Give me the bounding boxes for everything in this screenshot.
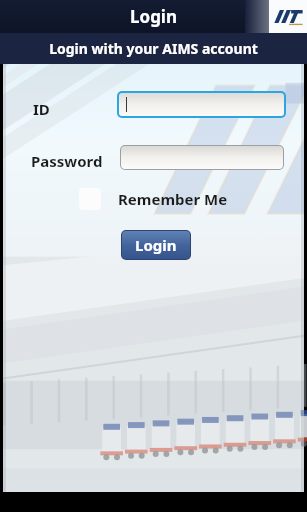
- staticText: Password: [31, 151, 103, 171]
- staticText: Login: [135, 235, 177, 255]
- button[interactable]: Login: [122, 231, 190, 259]
- button[interactable]: [121, 146, 283, 169]
- staticText: Login with your AIMS account: [49, 39, 258, 58]
- staticText: ID: [33, 99, 50, 119]
- staticText: Remember Me: [118, 189, 228, 209]
- button[interactable]: Remember Me: [79, 188, 228, 210]
- other: AAT logo: [269, 0, 307, 33]
- button[interactable]: [119, 93, 284, 116]
- staticText: Login: [130, 5, 178, 28]
